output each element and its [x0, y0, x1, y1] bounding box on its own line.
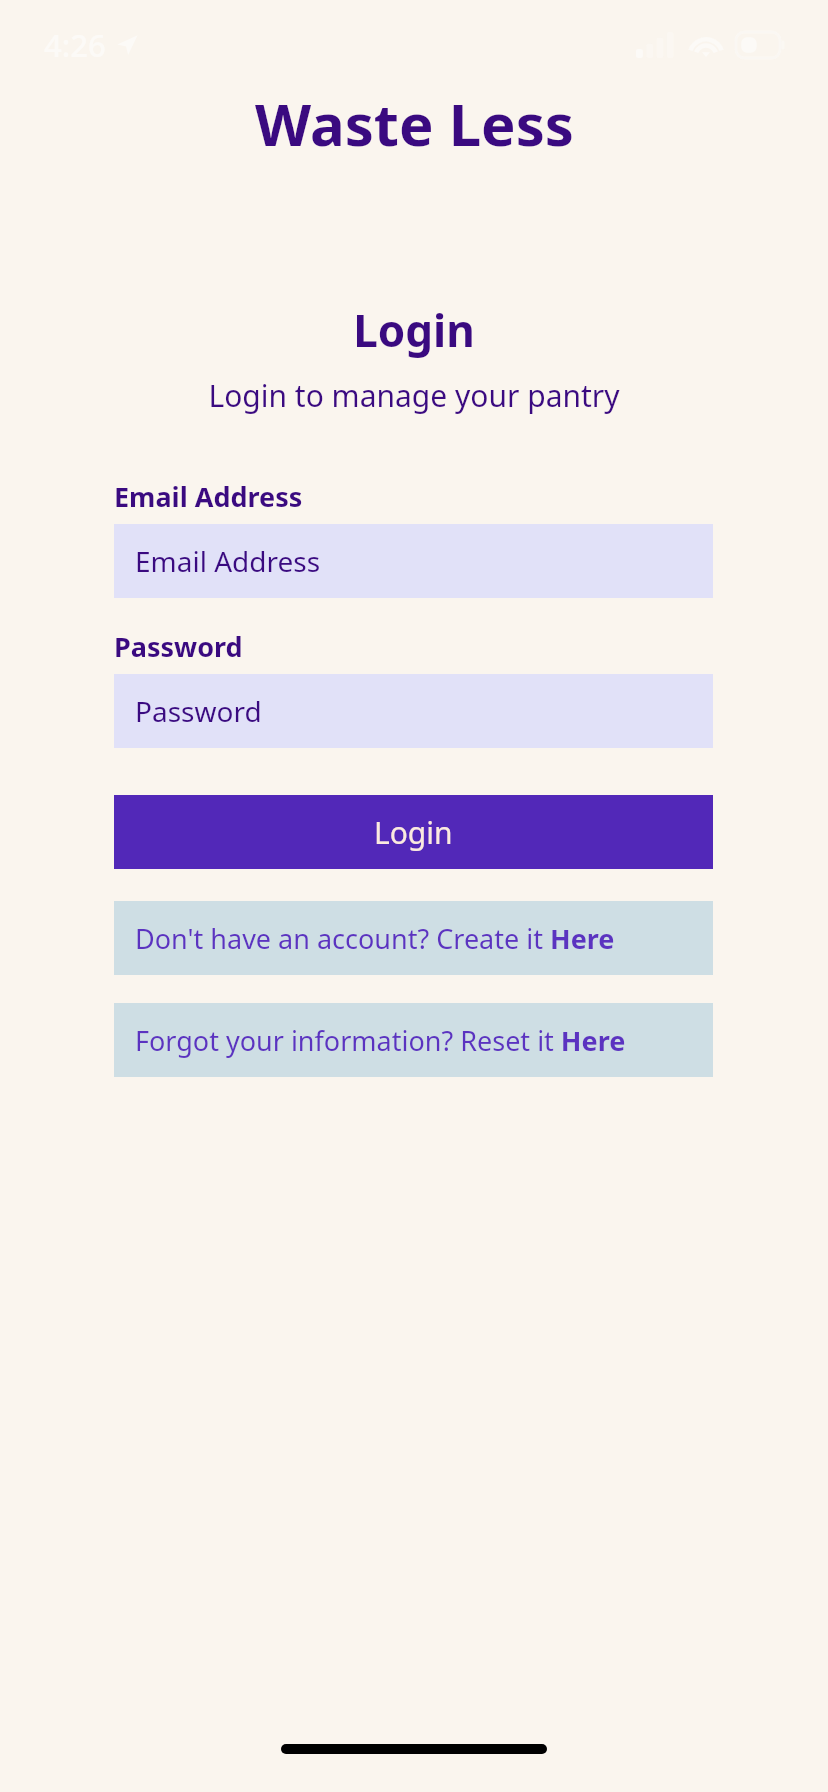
staticText: Email Address	[135, 542, 321, 580]
button[interactable]: Login	[114, 795, 713, 869]
staticText: Email Address	[114, 478, 303, 515]
button[interactable]: Forgot your information? Reset it Here	[114, 1003, 713, 1077]
button[interactable]: Password	[114, 674, 713, 748]
staticText: Login to manage your pantry	[208, 375, 620, 416]
staticText: 4:26	[44, 24, 106, 66]
button[interactable]: Email Address	[114, 524, 713, 598]
staticText: Don't have an account? Create it Here	[135, 920, 615, 957]
staticText: Login	[353, 300, 475, 360]
staticText: Forgot your information? Reset it Here	[135, 1022, 626, 1059]
staticText: Password	[135, 692, 262, 730]
staticText: Login	[374, 812, 453, 853]
button[interactable]: Don't have an account? Create it Here	[114, 901, 713, 975]
staticText: Waste Less	[255, 84, 574, 163]
staticText: Password	[114, 628, 243, 665]
